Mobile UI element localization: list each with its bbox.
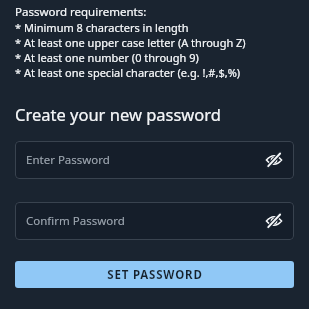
staticText: Password requirements: — [15, 4, 147, 20]
staticText: Enter Password — [26, 152, 110, 168]
button[interactable]: Show password — [263, 210, 285, 232]
staticText: * Minimum 8 characters in length — [15, 20, 189, 35]
staticText: * At least one upper case letter (A thro… — [15, 35, 246, 50]
button[interactable]: Enter Password — [15, 141, 294, 179]
button[interactable]: Confirm Password — [15, 202, 294, 240]
staticText: * At least one special character (e.g. !… — [15, 65, 241, 80]
button[interactable]: SET PASSWORD — [15, 261, 294, 288]
staticText: SET PASSWORD — [107, 267, 203, 283]
staticText: * At least one number (0 through 9) — [15, 50, 199, 65]
button[interactable]: Show password — [263, 149, 285, 171]
staticText: Confirm Password — [26, 213, 125, 229]
staticText: Create your new password — [15, 103, 221, 125]
